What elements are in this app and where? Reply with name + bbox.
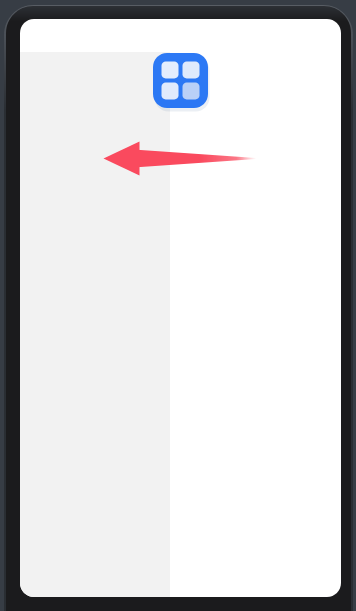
button[interactable]: Apps [0,0,356,611]
